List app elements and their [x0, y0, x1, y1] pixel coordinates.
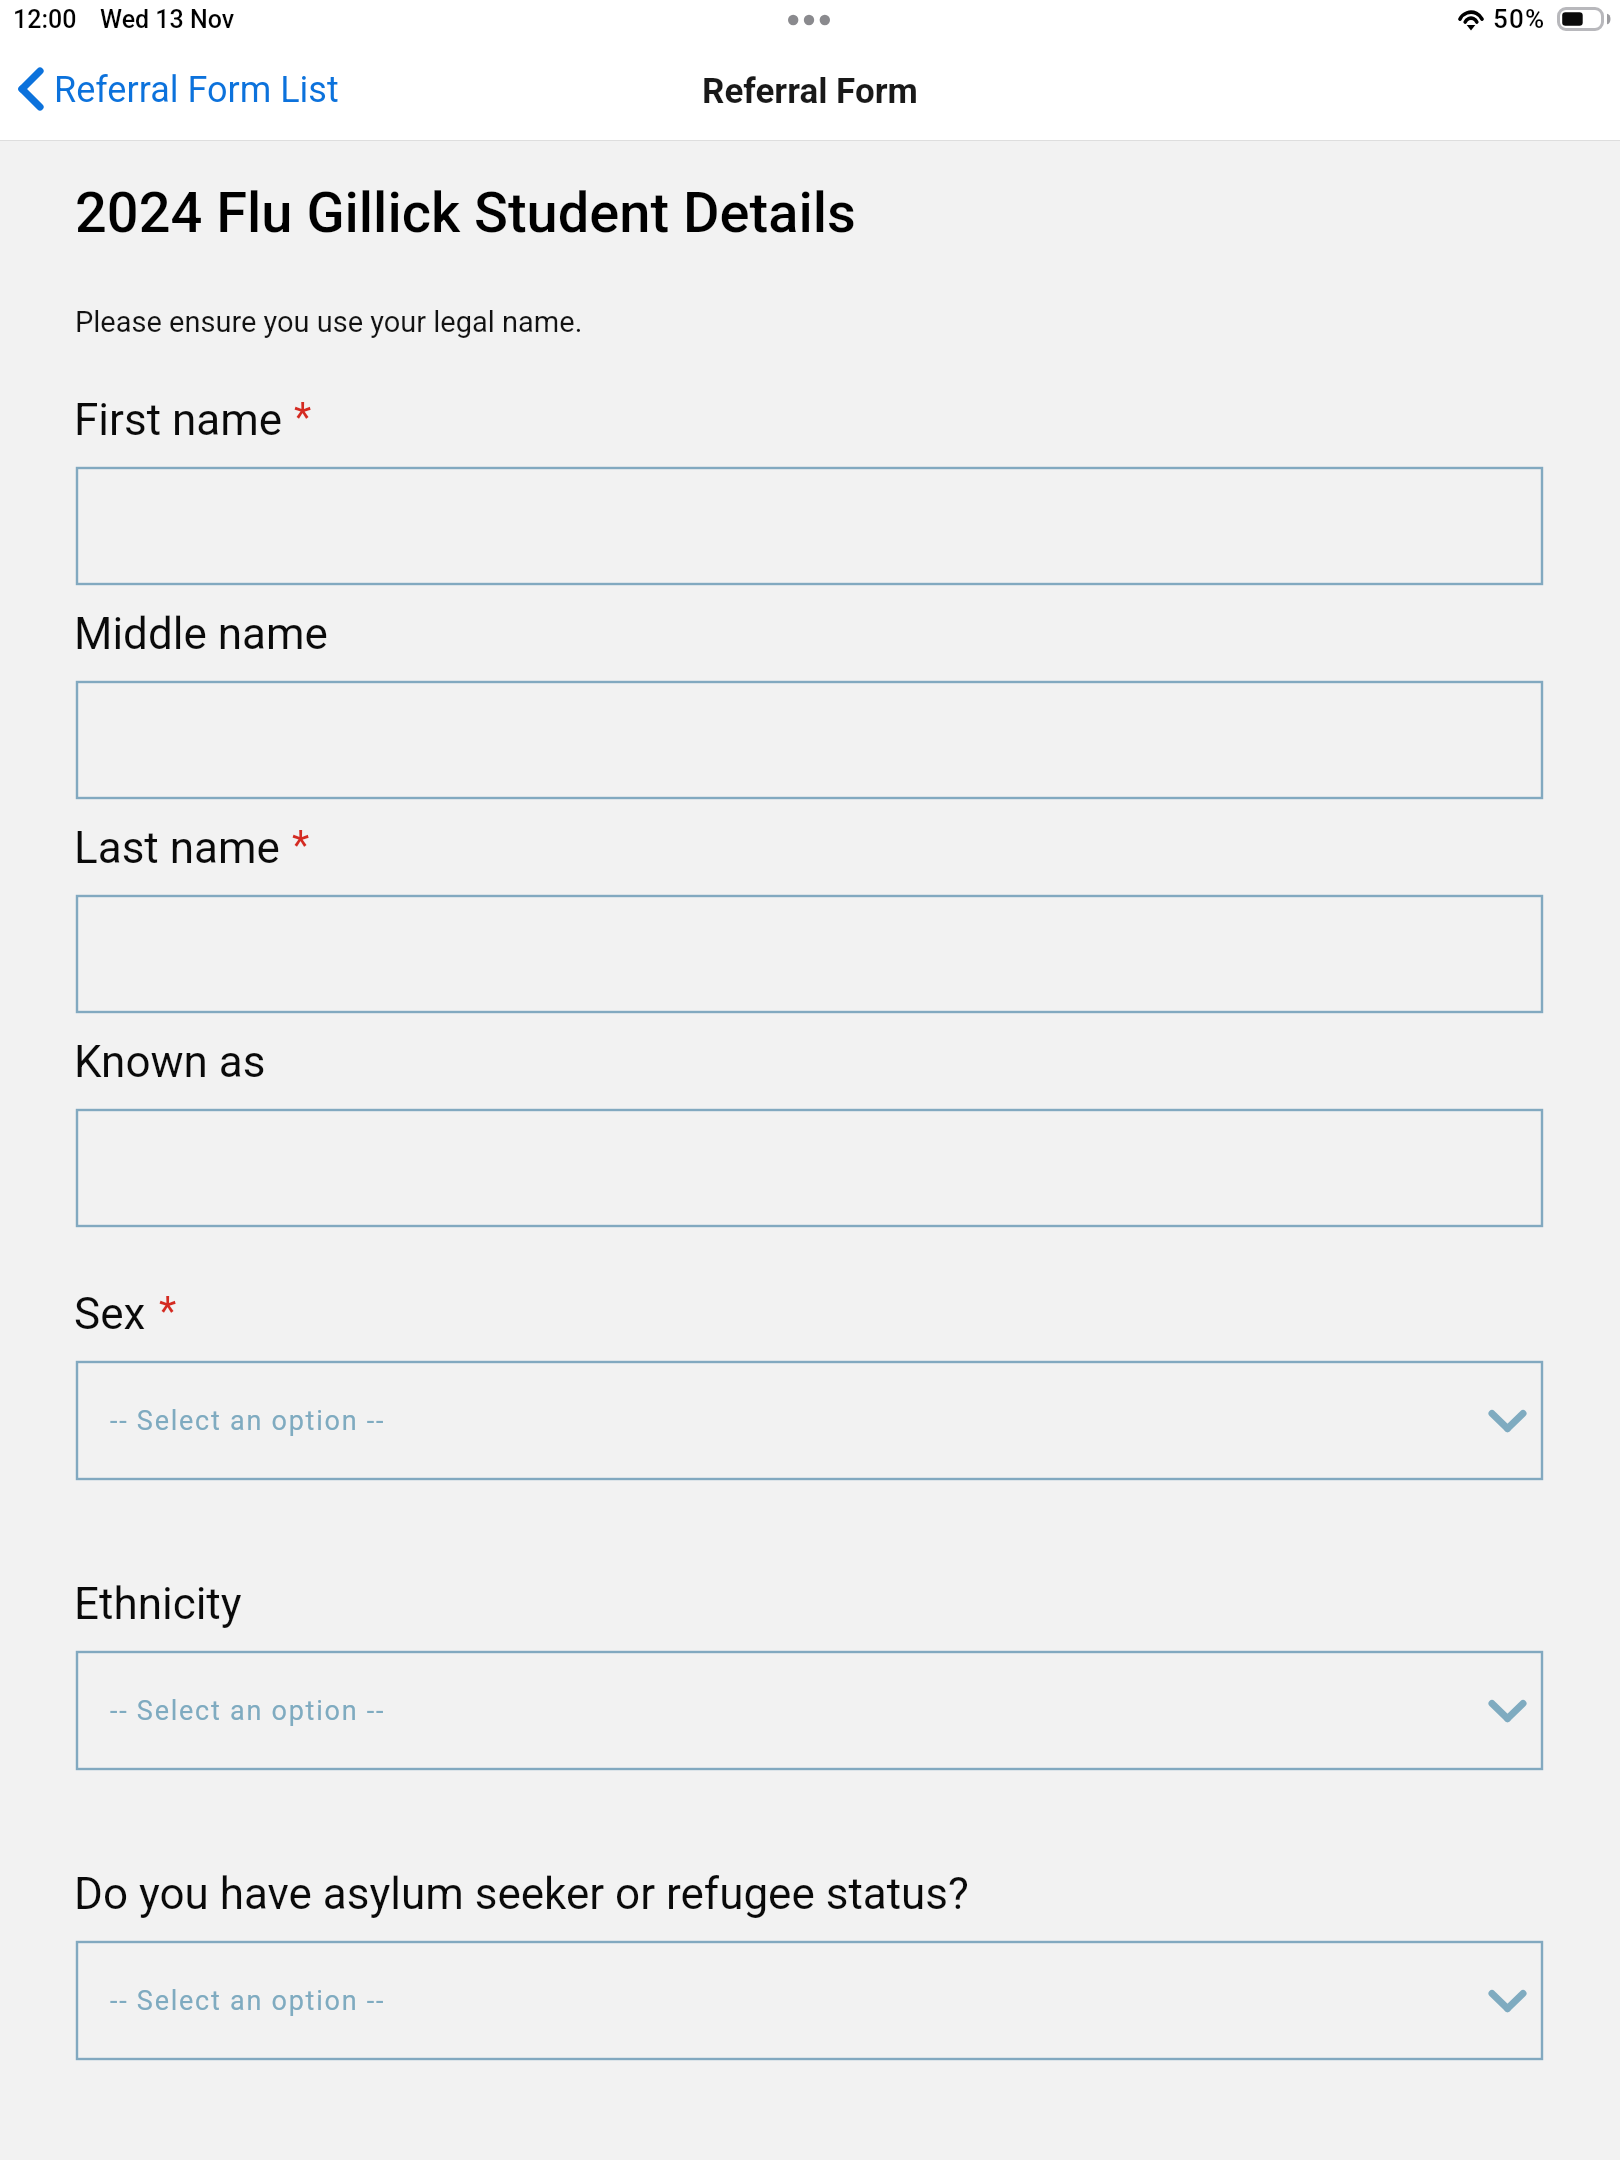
staticText: Wed 13 Nov: [100, 5, 235, 34]
button[interactable]: Select an option: [77, 1942, 1542, 2059]
staticText: -- Select an option --: [110, 1695, 386, 1727]
staticText: Last name: [74, 822, 280, 874]
staticText: Ethnicity: [74, 1578, 242, 1630]
button[interactable]: Select an option: [77, 1652, 1542, 1769]
button[interactable]: Text input: [77, 896, 1542, 1012]
staticText: Middle name: [74, 608, 328, 660]
staticText: Known as: [74, 1036, 266, 1088]
staticText: First name: [74, 394, 283, 446]
staticText: Do you have asylum seeker or refugee sta…: [74, 1868, 969, 1920]
staticText: 12:00: [13, 5, 77, 34]
staticText: *: [159, 1288, 177, 1335]
staticText: Referral Form List: [54, 69, 339, 111]
staticText: Referral Form: [702, 71, 918, 112]
staticText: -- Select an option --: [110, 1405, 386, 1437]
button[interactable]: Text input: [77, 468, 1542, 584]
staticText: *: [294, 394, 312, 441]
button[interactable]: Text input: [77, 682, 1542, 798]
staticText: 2024 Flu Gillick Student Details: [75, 180, 856, 246]
button[interactable]: Select an option: [77, 1362, 1542, 1479]
staticText: -- Select an option --: [110, 1985, 386, 2017]
staticText: *: [292, 822, 310, 869]
staticText: Sex: [74, 1288, 146, 1340]
staticText: 50%: [1493, 4, 1546, 34]
button[interactable]: Back to Referral Form List: [6, 56, 346, 114]
staticText: Please ensure you use your legal name.: [75, 305, 583, 339]
button[interactable]: Text input: [77, 1110, 1542, 1226]
